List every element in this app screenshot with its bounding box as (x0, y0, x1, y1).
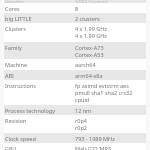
button[interactable]: GPU (4, 143, 146, 150)
staticText: 4 x 1.99 GHz (75, 32, 107, 39)
button[interactable]: Clock speed (4, 133, 146, 143)
staticText: Cortex-A53 (75, 51, 104, 58)
staticText: ABI (5, 72, 75, 79)
button[interactable]: Instructions (4, 80, 146, 105)
staticText: ARM Limited (75, 0, 108, 3)
staticText: arm64-v8a (75, 72, 103, 79)
staticText: cpuid (75, 96, 90, 103)
staticText: r0p2 (75, 124, 87, 131)
button[interactable]: ABI (4, 70, 146, 80)
button[interactable]: Clusters (4, 23, 146, 42)
staticText: Cores (5, 5, 75, 12)
staticText: 2 clusters (75, 15, 100, 22)
button[interactable]: Vendor (4, 0, 146, 3)
staticText: Clusters (5, 25, 75, 32)
staticText: 12 nm (75, 107, 92, 114)
button[interactable]: Revision (4, 115, 146, 133)
staticText: 4 x 1.99 GHz (75, 25, 107, 32)
staticText: 793 - 1989 MHz (75, 135, 115, 142)
button[interactable]: Cores (4, 3, 146, 13)
staticText: Vendor (5, 0, 75, 3)
staticText: r0p4 (75, 117, 87, 124)
staticText: Process technology (5, 107, 75, 114)
button[interactable]: Machine (4, 59, 146, 70)
staticText: Instructions (5, 82, 75, 89)
staticText: Family (5, 44, 75, 51)
staticText: fp asimd evtstrm aes (75, 82, 129, 89)
staticText: Clock speed (5, 135, 75, 142)
staticText: Machine (5, 61, 75, 68)
staticText: Revision (5, 117, 75, 124)
staticText: Cortex-A73 (75, 44, 104, 51)
staticText: GPU (5, 145, 75, 150)
staticText: 8 (75, 5, 79, 12)
button[interactable]: big LITTLE (4, 13, 146, 23)
staticText: pmull sha1 sha2 crc32 (75, 89, 133, 96)
staticText: Mali-G72 MP3 (75, 145, 111, 150)
button[interactable]: Family (4, 42, 146, 59)
staticText: big LITTLE (5, 15, 75, 22)
button[interactable]: Process technology (4, 105, 146, 115)
staticText: aarch64 (75, 61, 96, 68)
